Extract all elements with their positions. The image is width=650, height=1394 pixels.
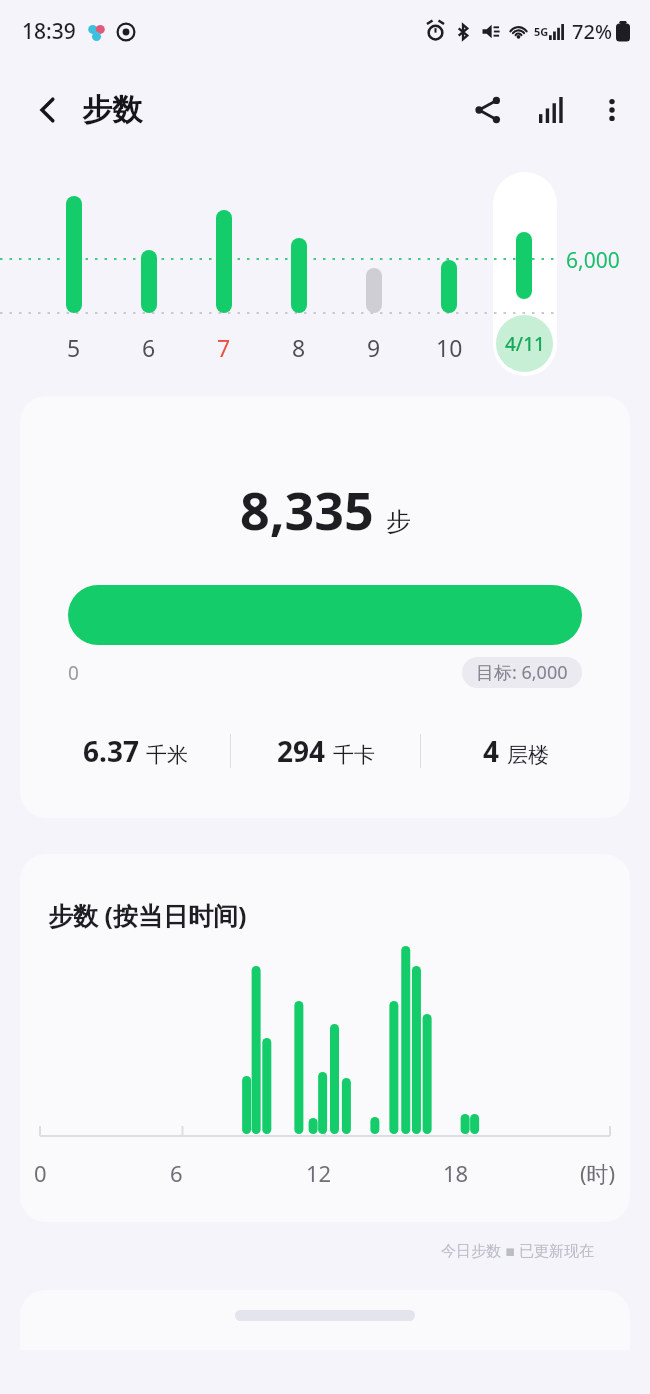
staticText: 步: [386, 506, 411, 537]
button[interactable]: 步数 (按当日时间): [20, 854, 630, 1222]
staticText: 4/11: [505, 331, 545, 357]
staticText: 8,335: [240, 474, 374, 545]
button[interactable]: 4: [421, 732, 610, 770]
staticText: 千米: [146, 742, 188, 768]
staticText: 5: [67, 332, 81, 363]
button[interactable]: More options: [586, 84, 638, 136]
staticText: 8: [292, 332, 306, 363]
staticText: 0: [34, 1158, 47, 1188]
button[interactable]: [20, 1290, 630, 1350]
staticText: 千卡: [333, 742, 375, 768]
staticText: 9: [367, 332, 381, 363]
staticText: 6.37: [83, 732, 139, 770]
staticText: 12: [306, 1158, 332, 1188]
staticText: 今日步数 ▪ 已更新现在: [0, 1240, 594, 1260]
button[interactable]: 6.37: [40, 732, 230, 770]
staticText: 步数: [82, 91, 142, 129]
staticText: (时): [580, 1158, 616, 1188]
button[interactable]: Charts: [526, 84, 578, 136]
staticText: 72%: [572, 18, 612, 45]
staticText: 18:39: [22, 17, 76, 46]
button[interactable]: Selected day 4/11: [493, 172, 557, 376]
staticText: 6,000: [566, 246, 620, 275]
staticText: 5G: [534, 24, 549, 39]
staticText: 目标: 6,000: [476, 660, 568, 685]
staticText: 6: [170, 1158, 183, 1188]
staticText: 6: [142, 332, 156, 363]
staticText: 步数 (按当日时间): [48, 898, 247, 932]
button[interactable]: 294: [231, 732, 420, 770]
button[interactable]: Back: [20, 82, 76, 138]
button[interactable]: Share: [462, 84, 514, 136]
staticText: 18: [443, 1158, 469, 1188]
staticText: 0: [68, 660, 79, 686]
staticText: 10: [436, 332, 463, 363]
staticText: 4: [483, 732, 500, 770]
staticText: 7: [217, 332, 231, 363]
staticText: 层楼: [507, 742, 549, 768]
button[interactable]: 8,335: [20, 396, 630, 818]
staticText: 294: [277, 732, 326, 770]
